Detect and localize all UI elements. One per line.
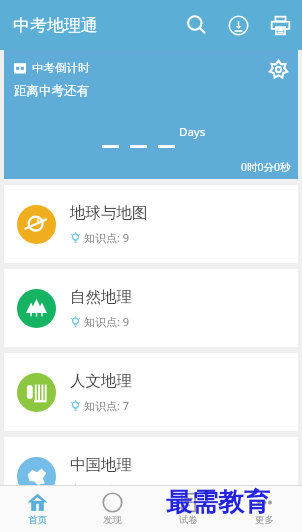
button[interactable]: Settings — [265, 56, 291, 82]
staticText: 中考倒计时 — [32, 61, 90, 75]
staticText: 知识点: 9 — [84, 314, 130, 329]
staticText: 自然地理 — [70, 287, 132, 307]
staticText: 知识点: 9 — [84, 230, 130, 245]
button[interactable]: 发现 — [75, 485, 150, 532]
staticText: 0时0分0秒 — [241, 160, 291, 174]
staticText: 更多 — [255, 514, 274, 526]
staticText: 地球与地图 — [70, 203, 148, 223]
staticText: 知识点: 7 — [84, 482, 130, 497]
button[interactable]: Search — [180, 9, 212, 41]
button[interactable]: 试卷 — [150, 485, 226, 532]
staticText: 知识点: 7 — [84, 398, 130, 413]
staticText: 中考地理通 — [13, 15, 98, 36]
button[interactable]: Download — [222, 9, 254, 41]
button[interactable]: 人文地理 — [4, 353, 298, 431]
staticText: 距离中考还有 — [14, 83, 89, 99]
staticText: 试卷 — [179, 514, 198, 526]
button[interactable]: 地球与地图 — [4, 185, 298, 263]
staticText: 人文地理 — [70, 371, 132, 391]
staticText: Days — [179, 124, 206, 140]
button[interactable]: Print — [264, 9, 296, 41]
staticText: 最需教育 — [166, 486, 270, 519]
staticText: 首页 — [28, 514, 47, 526]
button[interactable]: 首页 — [0, 485, 75, 532]
button[interactable]: 自然地理 — [4, 269, 298, 347]
button[interactable]: 中国地理 — [4, 437, 298, 515]
button[interactable]: 更多 — [226, 485, 302, 532]
staticText: 发现 — [103, 514, 122, 526]
staticText: 中国地理 — [70, 455, 132, 475]
button[interactable]: 中考倒计时 — [4, 50, 298, 179]
